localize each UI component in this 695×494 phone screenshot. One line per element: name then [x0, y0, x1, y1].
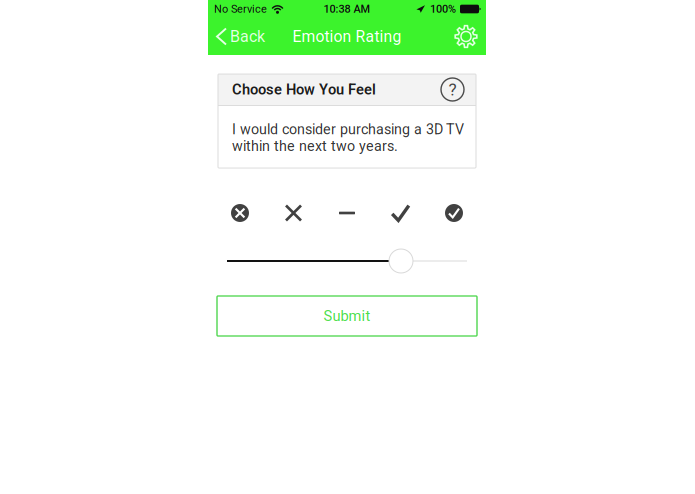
button[interactable]: Agree: [382, 199, 418, 227]
staticText: Choose How You Feel: [232, 81, 376, 98]
staticText: Back: [230, 27, 265, 46]
staticText: 100%: [430, 3, 456, 15]
staticText: Emotion Rating: [292, 27, 401, 46]
button[interactable]: Help: [439, 76, 466, 103]
staticText: Submit: [323, 307, 370, 325]
button[interactable]: Back: [208, 18, 273, 55]
button[interactable]: Neutral: [329, 199, 365, 227]
button[interactable]: Strongly disagree: [222, 199, 258, 227]
button[interactable]: Settings: [444, 18, 486, 55]
button[interactable]: Submit: [217, 296, 477, 336]
button[interactable]: Disagree: [275, 199, 311, 227]
button[interactable]: Strongly agree: [436, 199, 472, 227]
staticText: No Service: [214, 3, 267, 15]
staticText: I would consider purchasing a 3D TV with…: [232, 121, 464, 154]
staticText: 10:38 AM: [323, 3, 370, 15]
staticText: ?: [448, 79, 456, 100]
